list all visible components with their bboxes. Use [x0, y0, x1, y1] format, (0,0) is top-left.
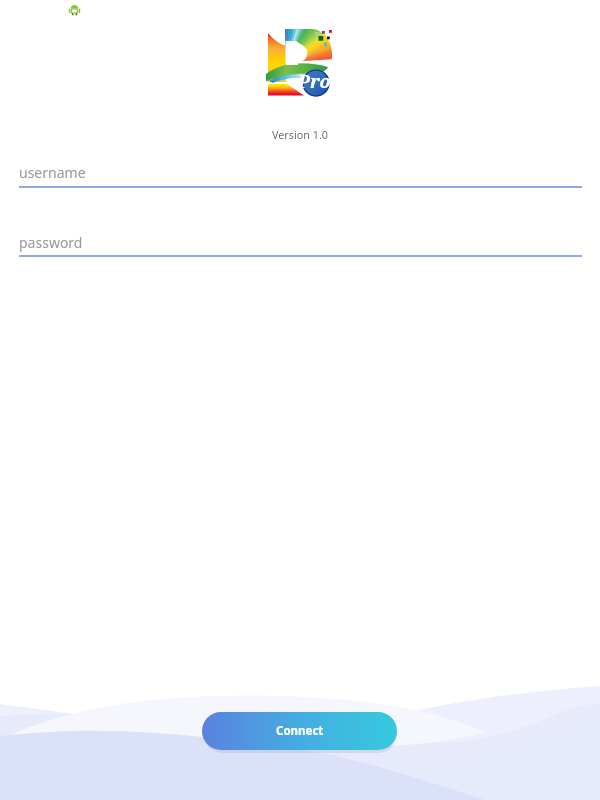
- button[interactable]: username: [19, 163, 582, 188]
- staticText: username: [19, 163, 86, 182]
- button[interactable]: password: [19, 233, 582, 257]
- button[interactable]: Connect: [202, 712, 397, 750]
- staticText: Version 1.0: [272, 127, 329, 142]
- other: Android system status: [68, 3, 81, 16]
- staticText: password: [19, 233, 83, 252]
- staticText: Connect: [276, 723, 324, 739]
- staticText: Pro: [298, 69, 331, 94]
